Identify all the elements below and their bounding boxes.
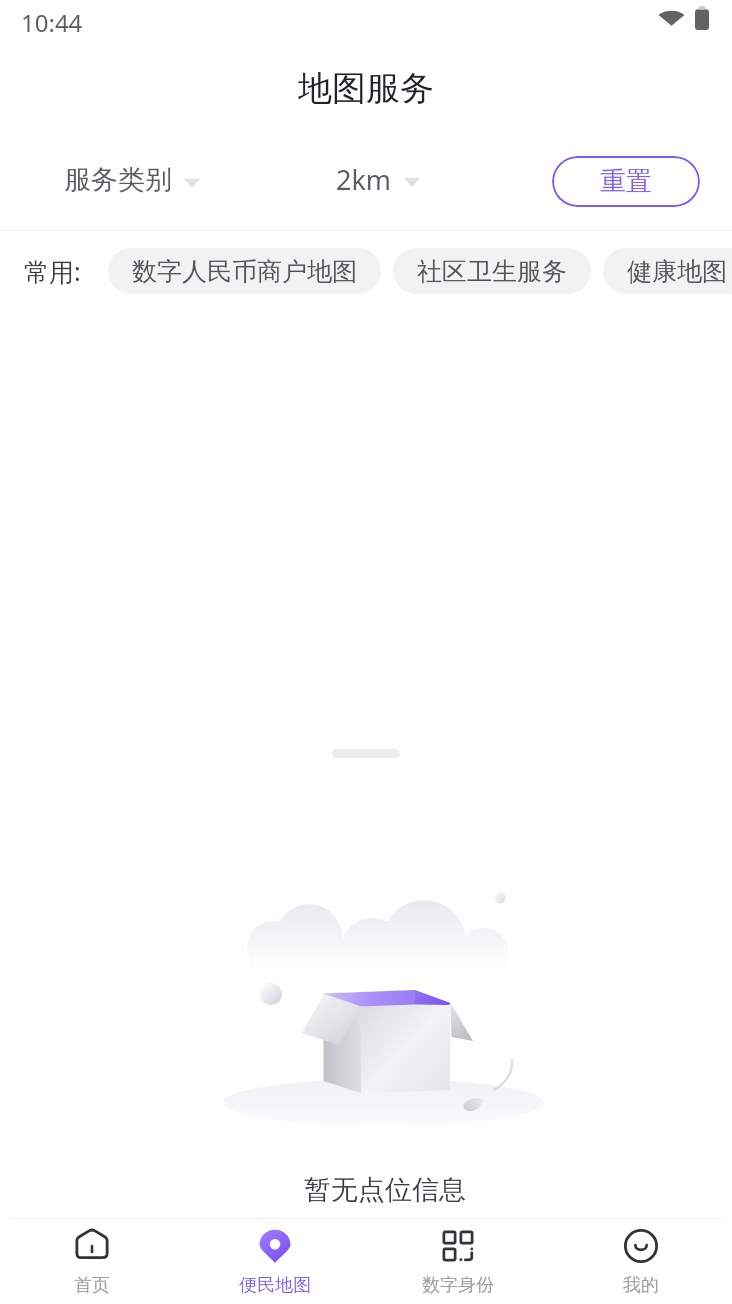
button[interactable]: 重置 xyxy=(552,156,700,207)
button[interactable]: 服务类别 xyxy=(64,163,200,197)
button[interactable]: 数字身份 xyxy=(366,1225,549,1297)
staticText: 2km xyxy=(336,161,392,198)
staticText: 地图服务 xyxy=(0,67,732,110)
button[interactable]: 我的 xyxy=(549,1225,732,1297)
staticText: 我的 xyxy=(623,1274,659,1297)
staticText: 数字人民币商户地图 xyxy=(132,256,357,287)
button[interactable]: 健康地图 xyxy=(603,248,732,294)
staticText: 服务类别 xyxy=(64,163,172,197)
staticText: 便民地图 xyxy=(239,1274,311,1297)
staticText: 暂无点位信息 xyxy=(304,1173,466,1207)
button[interactable]: 数字人民币商户地图 xyxy=(108,248,381,294)
button[interactable]: 社区卫生服务 xyxy=(393,248,591,294)
staticText: 社区卫生服务 xyxy=(417,256,567,287)
staticText: 重置 xyxy=(600,165,652,198)
staticText: 10:44 xyxy=(21,6,83,39)
button[interactable]: 2km xyxy=(336,161,420,198)
button[interactable]: 便民地图 xyxy=(183,1225,366,1297)
staticText: 健康地图 xyxy=(627,256,727,287)
staticText: 首页 xyxy=(74,1274,110,1297)
staticText: 常用: xyxy=(24,254,81,288)
staticText: 数字身份 xyxy=(422,1274,494,1297)
button[interactable]: 首页 xyxy=(0,1225,183,1297)
